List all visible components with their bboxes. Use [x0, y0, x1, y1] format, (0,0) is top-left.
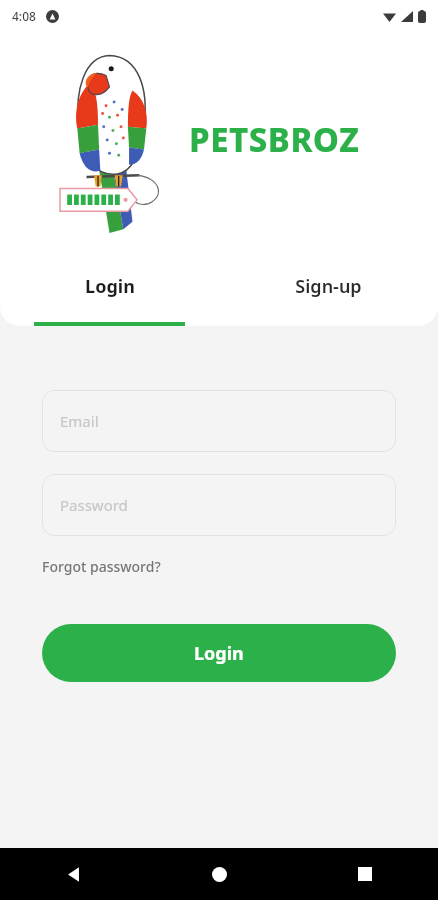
button[interactable]: Home	[146, 848, 292, 900]
button[interactable]: Login	[0, 247, 219, 326]
staticText: Email	[60, 411, 99, 431]
button[interactable]: Login	[42, 624, 396, 682]
button[interactable]: Sign-up	[219, 247, 438, 326]
button[interactable]: Password	[42, 474, 396, 536]
staticText: Sign-up	[295, 274, 362, 299]
button[interactable]: Forgot password?	[42, 555, 161, 578]
staticText: PETSBROZ	[189, 117, 360, 162]
button[interactable]: Recent apps	[292, 848, 438, 900]
staticText: 4:08	[12, 8, 36, 24]
staticText: Login	[194, 641, 244, 666]
staticText: Login	[85, 274, 135, 299]
button[interactable]: Email	[42, 390, 396, 452]
staticText: Forgot password?	[42, 557, 161, 576]
button[interactable]: Back	[0, 848, 146, 900]
staticText: Password	[60, 495, 128, 515]
